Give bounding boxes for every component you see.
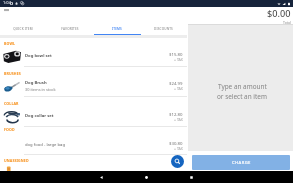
staticText: 1:04 [3,0,11,5]
staticText: $24.99 [169,80,183,86]
button[interactable]: QUICK ITEM [0,24,46,34]
staticText: FOOD [4,127,15,132]
staticText: Dog collar set [25,113,54,119]
staticText: + TAX [174,117,183,122]
staticText: QUICK ITEM [13,27,33,31]
staticText: Dog Brush [25,80,47,86]
staticText: 30 items in stock [25,87,56,92]
staticText: $30.80 [169,140,183,146]
staticText: DISCOUNTS [154,27,173,31]
staticText: UNASSIGNED [4,158,29,163]
button[interactable]: Search [171,155,184,168]
staticText: COLLAR [4,101,19,106]
button[interactable]: FAVORITES [46,24,93,34]
button[interactable]: DISCOUNTS [140,24,187,34]
staticText: Type an amount [218,82,267,91]
button[interactable]: CHARGE [192,155,290,170]
button[interactable]: Menu [0,7,12,19]
staticText: BOWL [4,41,16,46]
staticText: + TAX [174,57,183,62]
button[interactable]: Dog Brush [0,78,187,95]
staticText: CHARGE [232,160,251,166]
staticText: + TAX [174,146,183,151]
staticText: or select an item [217,92,267,101]
staticText: $15.80 [169,51,183,57]
staticText: $0.00 [267,7,291,20]
button[interactable]: Recents [169,171,214,183]
staticText: FAVORITES [61,27,79,31]
button[interactable]: Dog bowl set [0,49,187,66]
button[interactable]: ITEMS [93,24,140,34]
button[interactable]: Home [124,171,169,183]
staticText: ITEMS [112,27,122,31]
staticText: BRUSHES [4,71,21,76]
staticText: Total [283,20,291,25]
staticText: $12.80 [169,111,183,117]
button[interactable]: Dog collar set [0,109,187,126]
staticText: Dog bowl set [25,53,52,59]
staticText: dog food - large bag [25,142,66,148]
button[interactable]: dog food - large bag [0,138,187,155]
staticText: + TAX [174,86,183,91]
button[interactable]: Back [79,171,124,183]
